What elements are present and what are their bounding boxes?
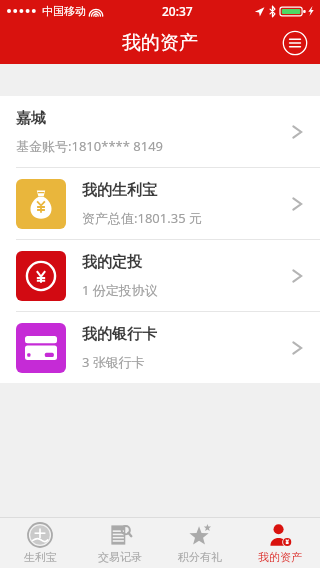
- staticText: 资产总值:1801.35 元: [82, 209, 202, 227]
- staticText: 生利宝: [24, 550, 57, 564]
- staticText: 嘉城: [16, 109, 46, 128]
- button[interactable]: 我的资产: [240, 518, 320, 568]
- staticText: 我的银行卡: [82, 325, 157, 344]
- staticText: 20:37: [162, 3, 193, 19]
- button[interactable]: Menu: [282, 30, 308, 56]
- staticText: 基金账号:1810**** 8149: [16, 137, 164, 155]
- staticText: 积分有礼: [178, 550, 222, 564]
- button[interactable]: 我的生利宝: [0, 168, 320, 239]
- staticText: 我的资产: [258, 550, 302, 564]
- button[interactable]: 我的定投: [0, 240, 320, 311]
- staticText: 我的生利宝: [82, 181, 157, 200]
- button[interactable]: 我的银行卡: [0, 312, 320, 383]
- button[interactable]: 嘉城: [0, 96, 320, 167]
- button[interactable]: 生利宝: [0, 518, 80, 568]
- staticText: 交易记录: [98, 550, 142, 564]
- staticText: 1 份定投协议: [82, 281, 158, 299]
- button[interactable]: 交易记录: [80, 518, 160, 568]
- button[interactable]: 积分有礼: [160, 518, 240, 568]
- staticText: 我的资产: [122, 31, 198, 55]
- staticText: 中国移动: [42, 4, 86, 18]
- staticText: 3 张银行卡: [82, 353, 145, 371]
- staticText: 我的定投: [82, 253, 142, 272]
